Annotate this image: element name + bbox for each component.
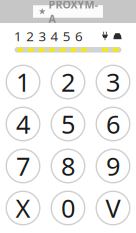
staticText: 4 xyxy=(51,27,59,45)
staticText: X xyxy=(15,191,30,225)
staticText: 5 xyxy=(61,107,75,141)
staticText: 4 xyxy=(16,107,30,141)
staticText: 0 xyxy=(61,191,75,225)
staticText: 6 xyxy=(106,107,120,141)
button[interactable]: 9 xyxy=(90,145,135,187)
staticText: PROXYMA xyxy=(48,0,97,26)
staticText: V xyxy=(105,191,120,225)
staticText: 3 xyxy=(106,65,120,99)
button[interactable]: 1 xyxy=(0,61,45,103)
staticText: 1 xyxy=(16,65,30,99)
button[interactable]: 4 xyxy=(0,103,45,145)
staticText: 1 xyxy=(14,27,22,45)
staticText: 2 xyxy=(26,27,34,45)
staticText: 9 xyxy=(106,149,120,183)
button[interactable]: 6 xyxy=(90,103,135,145)
staticText: 8 xyxy=(61,149,75,183)
button[interactable]: 7 xyxy=(0,145,45,187)
button[interactable]: V xyxy=(90,187,135,229)
button[interactable]: 3 xyxy=(90,61,135,103)
button[interactable]: 0 xyxy=(45,187,90,229)
staticText: 5 xyxy=(63,27,71,45)
button[interactable]: 8 xyxy=(45,145,90,187)
button[interactable]: 5 xyxy=(45,103,90,145)
staticText: 7 xyxy=(16,149,30,183)
staticText: 3 xyxy=(38,27,46,45)
button[interactable]: 2 xyxy=(45,61,90,103)
button[interactable]: X xyxy=(0,187,45,229)
staticText: 2 xyxy=(61,65,75,99)
staticText: 6 xyxy=(75,27,83,45)
